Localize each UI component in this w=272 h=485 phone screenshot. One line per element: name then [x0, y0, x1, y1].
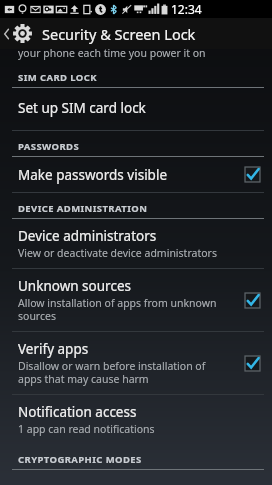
button[interactable]: Make passwords visible — [0, 157, 272, 192]
staticText: CRYPTOGRAPHIC MODES — [18, 453, 142, 466]
staticText: DEVICE ADMINISTRATION — [18, 202, 148, 215]
button[interactable]: Notification access — [0, 395, 272, 444]
staticText: Verify apps — [18, 340, 89, 358]
staticText: SIM CARD LOCK — [18, 71, 97, 84]
other: Checked — [243, 291, 262, 310]
staticText: Allow installation of apps from unknown … — [18, 296, 217, 323]
staticText: Disallow or warn before installation of … — [18, 359, 206, 386]
staticText: 12:34 — [171, 1, 202, 17]
staticText: Make passwords visible — [18, 166, 168, 184]
button[interactable]: Verify apps — [0, 332, 272, 394]
staticText: Unknown sources — [18, 277, 131, 295]
button[interactable]: Device administrators — [0, 219, 272, 268]
staticText: Set up SIM card lock — [18, 99, 146, 117]
staticText: Notification access — [18, 403, 137, 421]
staticText: View or deactivate device administrators — [18, 246, 217, 260]
staticText: PASSWORDS — [18, 140, 80, 153]
button[interactable]: Navigate up — [0, 23, 35, 44]
other: Checked — [243, 354, 262, 373]
button[interactable]: Set up SIM card lock — [0, 88, 272, 130]
button[interactable]: Unknown sources — [0, 269, 272, 331]
other: Checked — [243, 165, 262, 184]
staticText: 1 app can read notifications — [18, 422, 155, 436]
staticText: Security & Screen Lock — [42, 24, 196, 44]
staticText: Device administrators — [18, 227, 157, 245]
staticText: your phone each time you power it on — [18, 49, 206, 60]
